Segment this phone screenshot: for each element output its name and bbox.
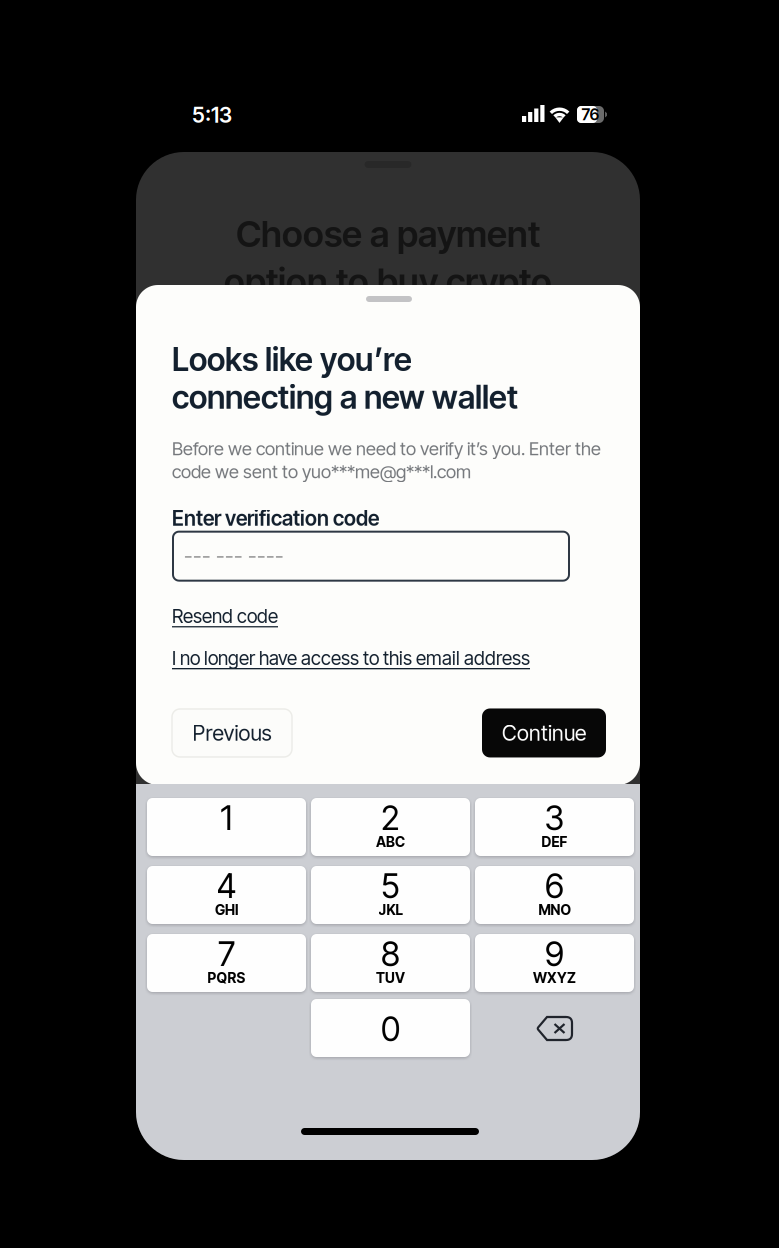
staticText: Looks like you’re [172,340,412,379]
staticText: GHI [215,901,238,918]
button[interactable]: 5 [311,866,470,924]
staticText: DEF [541,833,567,850]
button[interactable]: Delete [475,999,634,1057]
button[interactable]: 0 [311,999,470,1057]
staticText: 7 [218,934,235,974]
staticText: Resend code [172,605,278,627]
staticText: 0 [381,1009,400,1049]
staticText: Before we continue we need to verify it’… [172,437,601,459]
staticText: JKL [378,901,402,918]
staticText: Choose a payment [236,212,540,256]
staticText: 3 [544,798,564,838]
button[interactable]: 1 [147,798,306,856]
staticText: 76 [581,105,599,124]
staticText: 9 [545,934,564,974]
button[interactable]: 3 [475,798,634,856]
staticText: ABC [376,833,405,850]
staticText: --- --- ---- [184,544,284,569]
button[interactable]: I no longer have access to this email ad… [172,647,530,669]
button[interactable]: 2 [311,798,470,856]
staticText: PQRS [207,969,245,986]
staticText: Enter verification code [172,506,379,531]
staticText: 5 [381,866,400,906]
staticText: 5:13 [192,102,232,128]
button[interactable]: 4 [147,866,306,924]
staticText: WXYZ [533,969,576,986]
button[interactable]: 7 [147,934,306,992]
staticText: I no longer have access to this email ad… [172,647,530,669]
staticText: Continue [502,720,586,746]
staticText: 2 [381,798,400,838]
staticText: 4 [216,866,236,906]
staticText: Previous [192,720,271,746]
staticText: MNO [538,901,570,918]
button[interactable]: 9 [475,934,634,992]
button[interactable]: Continue [482,708,606,757]
staticText: TUV [376,969,405,986]
staticText: 1 [220,798,232,838]
staticText: code we sent to yuo***me@g***l.com [172,460,471,483]
staticText: option to buy crypto [224,260,552,303]
button[interactable]: Resend code [172,605,278,627]
button[interactable]: 6 [475,866,634,924]
staticText: 6 [545,866,564,906]
button[interactable]: Previous [172,709,292,757]
staticText: connecting a new wallet [172,378,518,416]
button[interactable]: 8 [311,934,470,992]
staticText: 8 [381,934,400,974]
